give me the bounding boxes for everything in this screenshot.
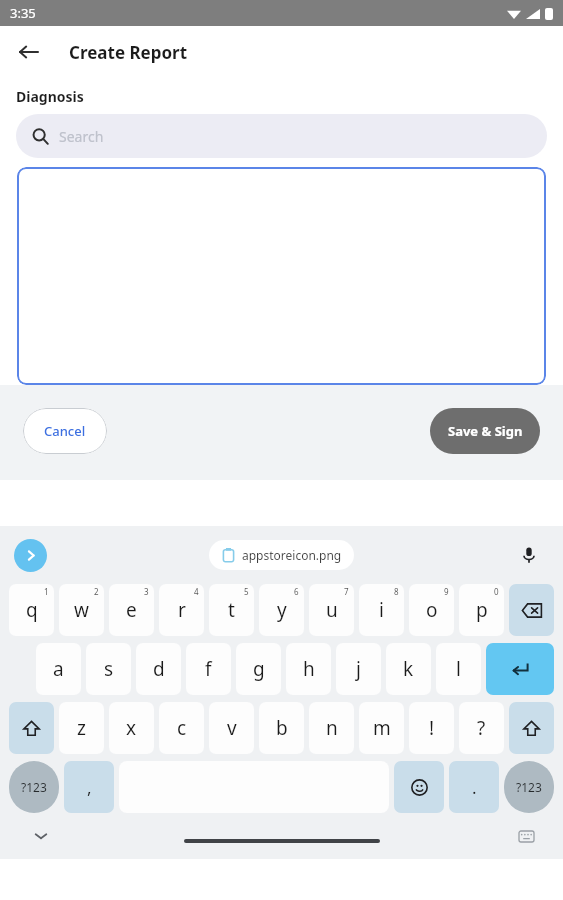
staticText: b: [276, 715, 288, 741]
button[interactable]: !: [409, 702, 454, 754]
button[interactable]: Expand toolbar: [14, 539, 47, 572]
button[interactable]: j: [336, 643, 381, 695]
staticText: g: [253, 656, 265, 682]
staticText: 2: [94, 586, 99, 597]
button[interactable]: c: [159, 702, 204, 754]
button[interactable]: ,: [64, 761, 114, 813]
staticText: l: [456, 656, 461, 682]
button[interactable]: a: [36, 643, 81, 695]
button[interactable]: b: [259, 702, 304, 754]
button[interactable]: ?: [459, 702, 504, 754]
staticText: e: [126, 597, 137, 623]
staticText: 8: [394, 586, 399, 597]
staticText: u: [326, 597, 338, 623]
button[interactable]: Search: [16, 114, 547, 158]
staticText: n: [326, 715, 338, 741]
staticText: s: [104, 656, 114, 682]
button[interactable]: l: [436, 643, 481, 695]
staticText: i: [379, 597, 384, 623]
button[interactable]: n: [309, 702, 354, 754]
staticText: o: [426, 597, 438, 623]
button[interactable]: x: [109, 702, 154, 754]
staticText: ?123: [516, 779, 542, 795]
button[interactable]: Cancel: [23, 408, 107, 454]
button[interactable]: i: [359, 584, 404, 636]
staticText: ,: [87, 776, 92, 799]
button[interactable]: k: [386, 643, 431, 695]
button[interactable]: Back: [12, 35, 46, 69]
staticText: 0: [494, 586, 499, 597]
staticText: r: [178, 597, 186, 623]
staticText: f: [205, 656, 212, 682]
button[interactable]: Emoji: [394, 761, 444, 813]
staticText: z: [77, 715, 86, 741]
staticText: !: [429, 715, 435, 741]
button[interactable]: Save & Sign: [430, 408, 540, 454]
staticText: t: [228, 597, 235, 623]
button[interactable]: ?123: [9, 761, 59, 813]
staticText: j: [356, 656, 361, 682]
button[interactable]: g: [236, 643, 281, 695]
staticText: 1: [44, 586, 49, 597]
button[interactable]: Backspace: [509, 584, 554, 636]
button[interactable]: z: [59, 702, 104, 754]
staticText: Search: [59, 127, 104, 146]
staticText: 5: [244, 586, 249, 597]
staticText: 7: [344, 586, 349, 597]
staticText: a: [53, 656, 64, 682]
staticText: w: [74, 597, 89, 623]
staticText: v: [227, 715, 237, 741]
button[interactable]: t: [209, 584, 254, 636]
button[interactable]: m: [359, 702, 404, 754]
button[interactable]: Shift: [509, 702, 554, 754]
staticText: .: [472, 776, 477, 799]
staticText: 4: [194, 586, 199, 597]
button[interactable]: f: [186, 643, 231, 695]
button[interactable]: s: [86, 643, 131, 695]
button[interactable]: Enter: [486, 643, 554, 695]
button[interactable]: w: [59, 584, 104, 636]
staticText: q: [26, 597, 38, 623]
staticText: 9: [444, 586, 449, 597]
button[interactable]: r: [159, 584, 204, 636]
button[interactable]: .: [449, 761, 499, 813]
button[interactable]: p: [459, 584, 504, 636]
button[interactable]: o: [409, 584, 454, 636]
staticText: Save & Sign: [448, 422, 523, 440]
button[interactable]: v: [209, 702, 254, 754]
staticText: appstoreicon.png: [242, 547, 342, 563]
staticText: c: [177, 715, 187, 741]
staticText: Create Report: [69, 41, 188, 64]
staticText: x: [126, 715, 137, 741]
button[interactable]: Hide keyboard: [26, 821, 56, 851]
staticText: k: [403, 656, 414, 682]
staticText: ?123: [21, 779, 47, 795]
button[interactable]: q: [9, 584, 54, 636]
button[interactable]: Voice input: [513, 539, 545, 571]
button[interactable]: [17, 167, 546, 385]
staticText: d: [153, 656, 165, 682]
staticText: p: [476, 597, 488, 623]
button[interactable]: e: [109, 584, 154, 636]
button[interactable]: appstoreicon.png: [209, 540, 354, 570]
staticText: 3: [144, 586, 149, 597]
button[interactable]: ?123: [504, 761, 554, 813]
button[interactable]: d: [136, 643, 181, 695]
button[interactable]: y: [259, 584, 304, 636]
staticText: m: [373, 715, 391, 741]
staticText: 6: [294, 586, 299, 597]
button[interactable]: u: [309, 584, 354, 636]
staticText: Cancel: [44, 422, 86, 440]
button[interactable]: Shift: [9, 702, 54, 754]
button[interactable]: h: [286, 643, 331, 695]
staticText: ?: [477, 715, 486, 741]
staticText: 3:35: [10, 4, 36, 22]
staticText: y: [277, 597, 287, 623]
staticText: Diagnosis: [16, 87, 84, 106]
staticText: h: [303, 656, 315, 682]
button[interactable]: Switch keyboard: [511, 821, 541, 851]
